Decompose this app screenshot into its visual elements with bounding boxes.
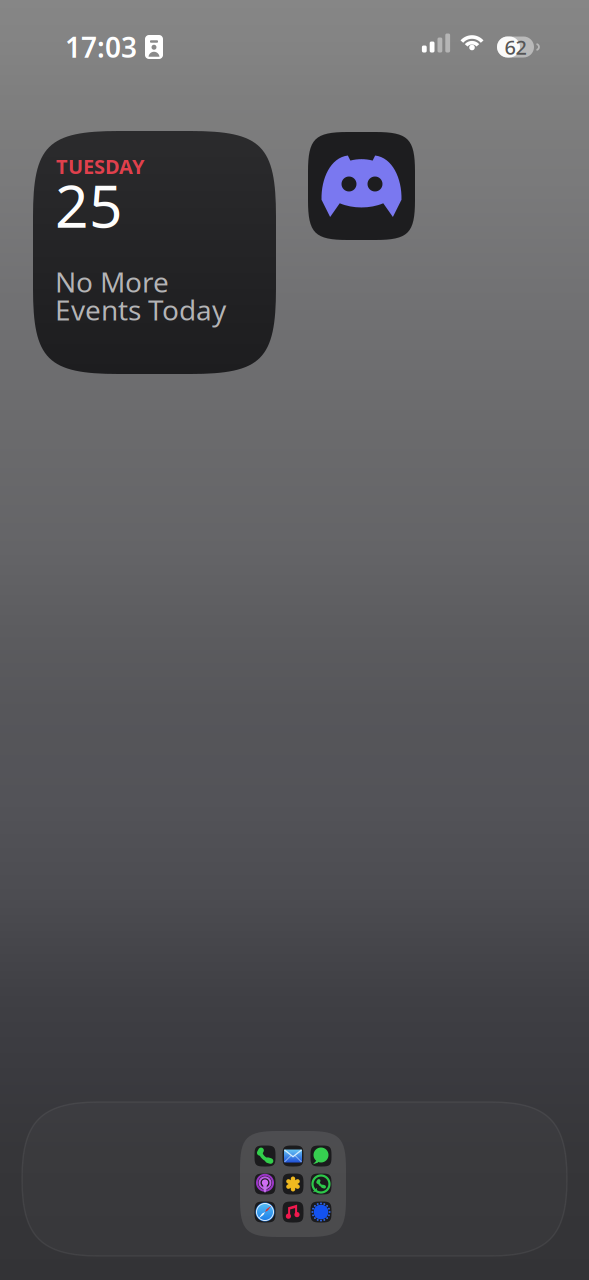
button[interactable]: Apps folder [240,1131,346,1237]
staticText: No More [55,263,169,300]
staticText: Events Today [55,291,226,328]
staticText: TUESDAY [56,153,145,180]
staticText: 62 [504,34,526,60]
button[interactable]: Calendar widget, Tuesday 25, No More Eve… [33,131,276,374]
staticText: 17:03 [65,28,137,66]
staticText: 25 [55,166,123,244]
button[interactable]: Discord [308,132,415,240]
